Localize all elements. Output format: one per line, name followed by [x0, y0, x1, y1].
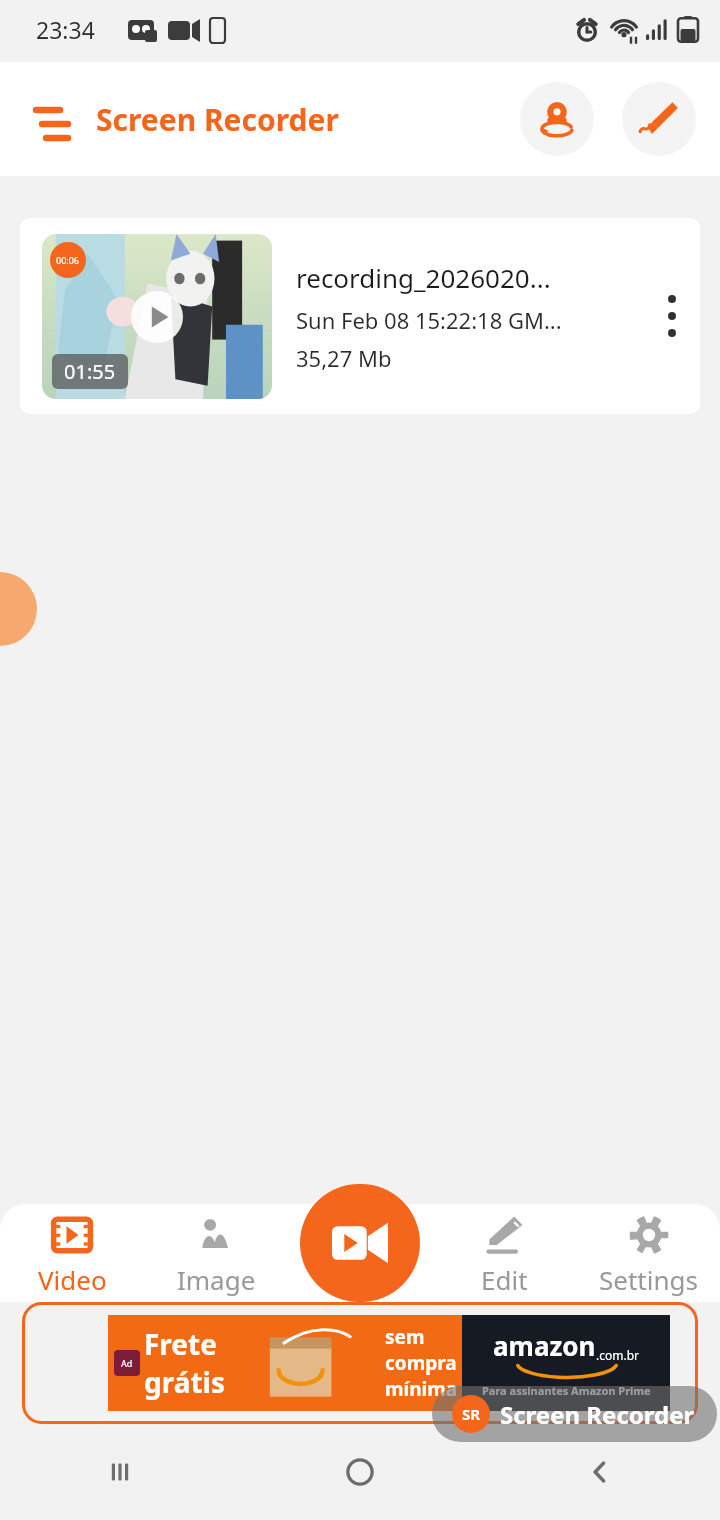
button[interactable]: Video: [0, 1204, 144, 1302]
button[interactable]: Ad: [22, 1302, 698, 1424]
staticText: .com.br: [596, 1347, 640, 1363]
staticText: Screen Recorder: [96, 99, 339, 140]
staticText: 35,27 Mb: [296, 343, 392, 373]
staticText: Ad: [121, 1357, 133, 1369]
button[interactable]: Settings: [576, 1204, 720, 1302]
staticText: 00:06: [56, 254, 80, 266]
staticText: Sun Feb 08 15:22:18 GM...: [296, 305, 562, 335]
staticText: mínima: [385, 1376, 458, 1402]
button[interactable]: 00:06: [20, 218, 700, 414]
staticText: Edit: [481, 1262, 528, 1297]
button[interactable]: Image: [144, 1204, 288, 1302]
button[interactable]: Brush: [622, 82, 696, 156]
staticText: recording_2026020...: [296, 260, 551, 295]
staticText: Settings: [599, 1262, 698, 1297]
staticText: 01:55: [64, 358, 116, 385]
staticText: Screen Recorder: [500, 1398, 695, 1431]
button[interactable]: Camera: [520, 82, 594, 156]
staticText: compra: [385, 1350, 457, 1376]
staticText: SR: [462, 1404, 481, 1424]
button[interactable]: Start recording: [300, 1184, 420, 1302]
staticText: Para assinantes Amazon Prime: [482, 1383, 651, 1398]
button[interactable]: More options: [644, 218, 700, 414]
staticText: grátis: [144, 1363, 226, 1401]
staticText: 23:34: [36, 14, 95, 45]
staticText: Video: [38, 1262, 107, 1297]
staticText: amazon: [493, 1328, 596, 1363]
button[interactable]: Edit: [432, 1204, 576, 1302]
staticText: Frete: [144, 1325, 217, 1363]
button[interactable]: Screen Recorder floating control: [432, 1386, 717, 1442]
button[interactable]: Menu: [30, 97, 74, 141]
staticText: sem: [385, 1324, 425, 1350]
staticText: Image: [177, 1262, 256, 1297]
